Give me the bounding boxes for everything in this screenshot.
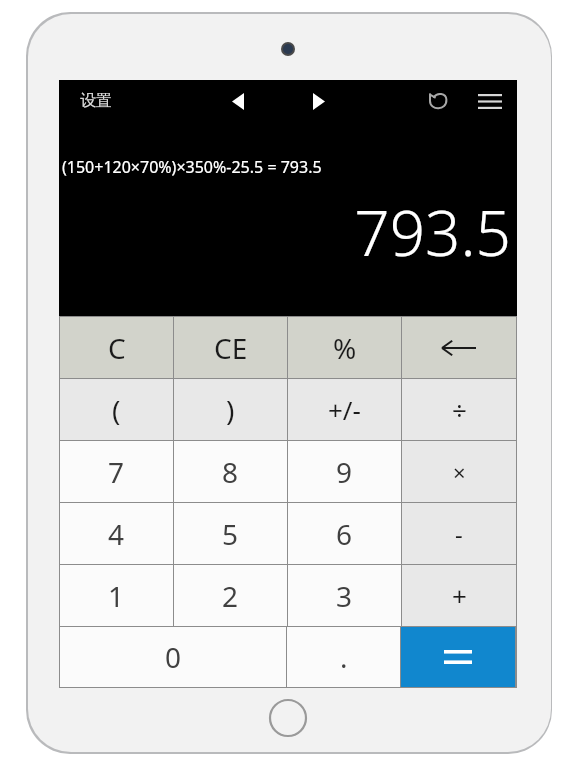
staticText: 设置 <box>80 91 112 111</box>
button[interactable]: - <box>402 503 516 564</box>
staticText: 7 <box>108 453 125 491</box>
button[interactable]: Menu <box>467 82 513 120</box>
button[interactable]: 4 <box>60 503 173 564</box>
staticText: 0 <box>165 638 182 676</box>
button[interactable]: 1 <box>60 565 173 626</box>
staticText: . <box>340 638 348 676</box>
button[interactable]: Previous <box>214 82 262 120</box>
staticText: + <box>452 578 467 613</box>
button[interactable]: × <box>402 441 516 502</box>
button[interactable]: 5 <box>174 503 287 564</box>
staticText: C <box>108 329 126 367</box>
staticText: 793.5 <box>59 190 511 274</box>
button[interactable]: CE <box>174 317 287 378</box>
button[interactable]: 0 <box>60 627 286 687</box>
button[interactable]: ÷ <box>402 379 516 440</box>
staticText: 1 <box>108 577 125 615</box>
staticText: +/- <box>328 392 361 427</box>
button[interactable]: 2 <box>174 565 287 626</box>
staticText: 9 <box>336 453 353 491</box>
staticText: (150+120×70%)×350%-25.5 = 793.5 <box>62 156 322 178</box>
button[interactable]: % <box>288 317 401 378</box>
staticText: ÷ <box>452 392 467 427</box>
staticText: ) <box>226 391 235 429</box>
button[interactable]: Undo <box>416 82 460 120</box>
button[interactable]: . <box>287 627 400 687</box>
button[interactable]: + <box>402 565 516 626</box>
button[interactable]: +/- <box>288 379 401 440</box>
button[interactable]: 设置 <box>61 85 131 117</box>
staticText: 8 <box>222 453 239 491</box>
staticText: ( <box>112 391 121 429</box>
staticText: 3 <box>336 577 353 615</box>
button[interactable]: 9 <box>288 441 401 502</box>
staticText: - <box>455 517 463 550</box>
button[interactable]: ( <box>60 379 173 440</box>
button[interactable]: Next <box>295 82 343 120</box>
staticText: % <box>333 329 357 367</box>
button[interactable]: 8 <box>174 441 287 502</box>
button[interactable]: Equals <box>401 627 515 687</box>
staticText: CE <box>214 329 248 367</box>
button[interactable]: ) <box>174 379 287 440</box>
button[interactable]: Backspace <box>402 317 516 378</box>
staticText: 4 <box>108 515 125 553</box>
staticText: 5 <box>222 515 239 553</box>
staticText: × <box>453 457 466 487</box>
staticText: 2 <box>222 577 239 615</box>
staticText: 6 <box>336 515 353 553</box>
button[interactable]: C <box>60 317 173 378</box>
button[interactable]: 6 <box>288 503 401 564</box>
button[interactable]: 7 <box>60 441 173 502</box>
button[interactable]: 3 <box>288 565 401 626</box>
